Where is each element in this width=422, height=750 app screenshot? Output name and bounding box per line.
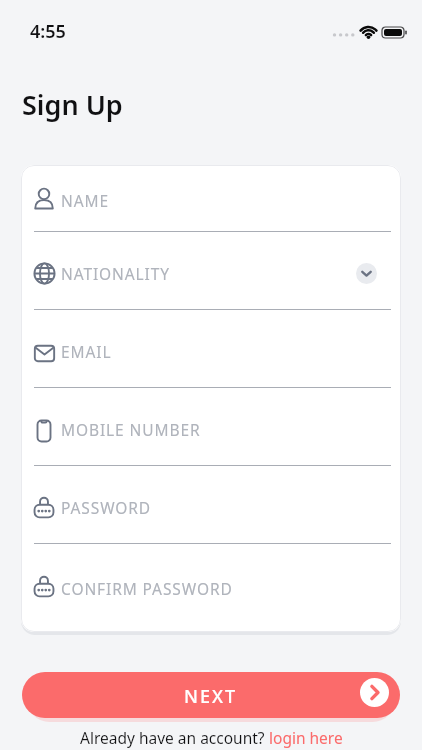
staticText: NAME bbox=[61, 190, 109, 211]
button[interactable]: MOBILE NUMBER bbox=[21, 388, 401, 466]
staticText: Already have an account? bbox=[80, 727, 269, 748]
button[interactable]: NATIONALITY bbox=[21, 232, 401, 310]
button[interactable]: Already have an account? bbox=[80, 727, 343, 748]
staticText: CONFIRM PASSWORD bbox=[61, 578, 233, 599]
button[interactable]: CONFIRM PASSWORD bbox=[21, 544, 401, 632]
button[interactable]: EMAIL bbox=[21, 310, 401, 388]
staticText: login here bbox=[269, 727, 343, 748]
staticText: 4:55 bbox=[30, 19, 66, 44]
staticText: NATIONALITY bbox=[61, 263, 170, 284]
staticText: Sign Up bbox=[22, 86, 123, 123]
button[interactable]: NAME bbox=[21, 165, 401, 232]
staticText: MOBILE NUMBER bbox=[61, 419, 201, 440]
button[interactable]: NEXT bbox=[22, 672, 400, 718]
staticText: NEXT bbox=[184, 684, 238, 709]
button[interactable]: PASSWORD bbox=[21, 466, 401, 544]
staticText: PASSWORD bbox=[61, 497, 152, 518]
staticText: EMAIL bbox=[61, 341, 112, 362]
